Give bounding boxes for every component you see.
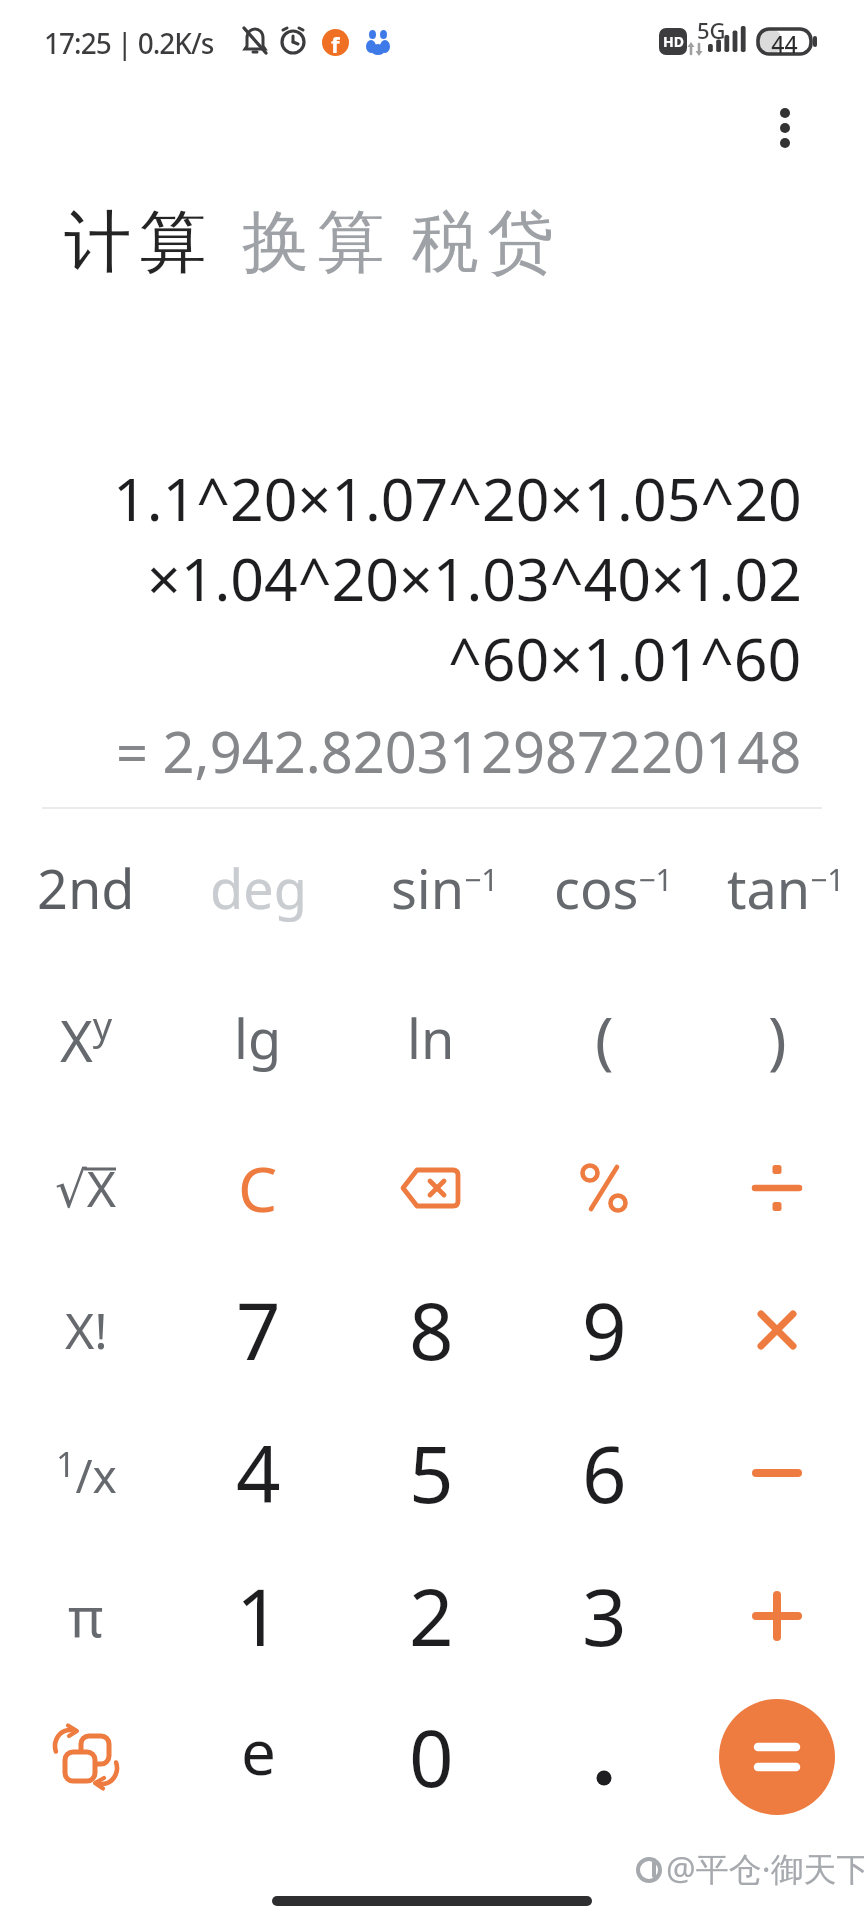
button[interactable]: [695, 1405, 859, 1541]
staticText: 5G: [697, 15, 726, 45]
button[interactable]: [349, 1120, 513, 1256]
staticText: ): [768, 996, 787, 1080]
button[interactable]: 8: [349, 1262, 513, 1398]
button[interactable]: 0: [349, 1689, 513, 1825]
button[interactable]: 6: [522, 1405, 686, 1541]
staticText: π: [68, 1579, 104, 1653]
staticText: 9: [582, 1277, 627, 1383]
staticText: 4: [236, 1420, 281, 1526]
staticText: HD: [663, 32, 684, 51]
button[interactable]: [695, 1262, 859, 1398]
staticText: 0: [409, 1704, 454, 1810]
staticText: ln: [407, 1001, 455, 1075]
button[interactable]: 换算: [238, 200, 388, 284]
staticText: 7: [236, 1277, 281, 1383]
button[interactable]: [522, 1689, 686, 1825]
staticText: 6: [582, 1420, 627, 1526]
staticText: ×1.04^20×1.03^40×1.02: [147, 538, 802, 618]
staticText: 17:25 | 0.2K/s: [44, 24, 214, 62]
button[interactable]: 计算: [60, 200, 210, 284]
button[interactable]: X!: [4, 1262, 168, 1398]
staticText: tan−1: [727, 851, 845, 925]
staticText: deg: [210, 851, 307, 925]
button[interactable]: 1: [176, 1548, 340, 1684]
button[interactable]: 税贷: [408, 200, 558, 284]
button[interactable]: ): [695, 970, 859, 1106]
button[interactable]: 4: [176, 1405, 340, 1541]
button[interactable]: e: [176, 1683, 340, 1819]
button[interactable]: 5: [349, 1405, 513, 1541]
staticText: ^60×1.01^60: [448, 618, 802, 698]
button[interactable]: tan−1: [704, 820, 864, 956]
staticText: (: [595, 996, 614, 1080]
staticText: 3: [582, 1563, 627, 1669]
button[interactable]: 3: [522, 1548, 686, 1684]
button[interactable]: ln: [349, 970, 513, 1106]
button[interactable]: Xy: [4, 970, 168, 1106]
button[interactable]: [522, 1120, 686, 1256]
button[interactable]: lg: [176, 970, 340, 1106]
button[interactable]: sin−1: [363, 820, 527, 956]
staticText: 8: [409, 1277, 454, 1383]
staticText: e: [241, 1709, 276, 1793]
button[interactable]: 2nd: [4, 820, 168, 956]
staticText: Xy: [60, 999, 113, 1078]
staticText: = 2,942.820312987220148: [116, 713, 802, 789]
staticText: f: [331, 29, 340, 56]
button[interactable]: 1/x: [4, 1405, 168, 1541]
staticText: 5: [409, 1420, 454, 1526]
button[interactable]: C: [176, 1120, 340, 1256]
button[interactable]: [763, 92, 807, 164]
button[interactable]: √X: [4, 1120, 168, 1256]
button[interactable]: [4, 1689, 168, 1825]
button[interactable]: deg: [176, 820, 340, 956]
button[interactable]: 7: [176, 1262, 340, 1398]
button[interactable]: [695, 1120, 859, 1256]
button[interactable]: [695, 1548, 859, 1684]
staticText: cos−1: [554, 851, 673, 925]
staticText: 2: [409, 1563, 454, 1669]
staticText: 1/x: [56, 1441, 117, 1506]
staticText: 1.1^20×1.07^20×1.05^20: [113, 458, 802, 538]
staticText: X!: [65, 1296, 108, 1364]
button[interactable]: 2: [349, 1548, 513, 1684]
staticText: @平仓·御天下: [666, 1846, 864, 1891]
button[interactable]: π: [4, 1548, 168, 1684]
button[interactable]: 9: [522, 1262, 686, 1398]
staticText: 44: [756, 28, 813, 54]
staticText: √X: [55, 1154, 117, 1222]
staticText: C: [238, 1146, 278, 1230]
staticText: sin−1: [391, 851, 499, 925]
staticText: 2nd: [37, 851, 135, 925]
staticText: 1: [236, 1563, 281, 1669]
staticText: lg: [234, 1001, 282, 1075]
button[interactable]: [719, 1699, 835, 1815]
button[interactable]: (: [522, 970, 686, 1106]
button[interactable]: cos−1: [531, 820, 695, 956]
